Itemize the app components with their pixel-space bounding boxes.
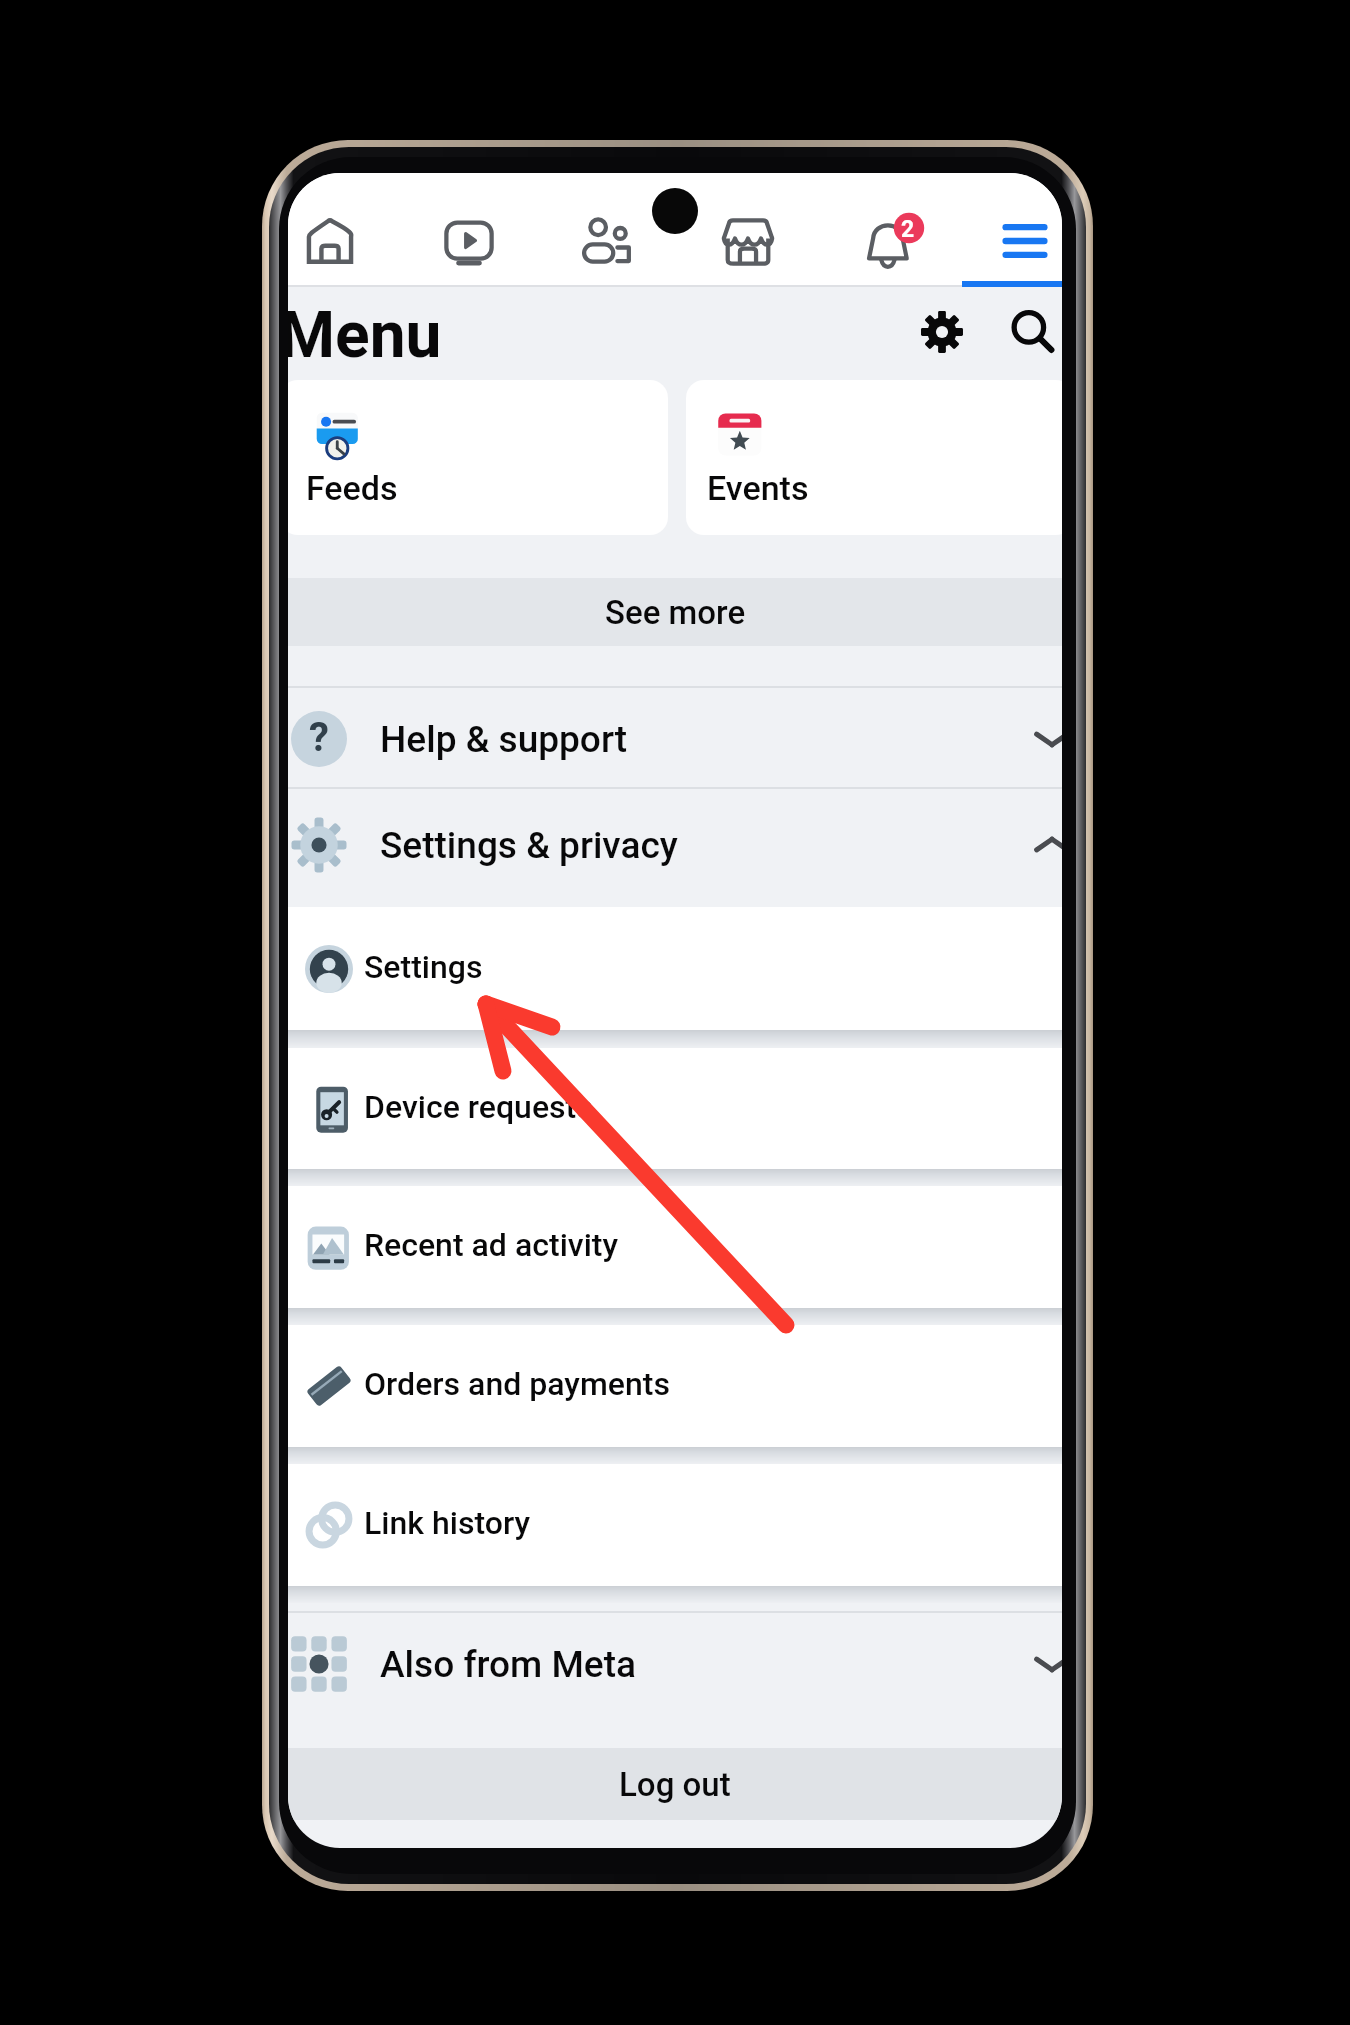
button[interactable]: Settings <box>902 292 982 372</box>
staticText: See more <box>605 593 746 632</box>
button[interactable]: Marketplace <box>692 191 804 291</box>
staticText: 2 <box>901 216 915 243</box>
button[interactable]: Video <box>413 191 525 291</box>
staticText: Settings & privacy <box>380 824 678 867</box>
button[interactable]: Home <box>288 191 386 291</box>
staticText: Recent ad activity <box>364 1226 619 1264</box>
button[interactable]: Notifications <box>840 191 952 291</box>
button[interactable]: Link history <box>288 1464 1062 1586</box>
button[interactable]: Recent ad activity <box>288 1186 1062 1308</box>
button[interactable]: Friends <box>551 191 663 291</box>
button[interactable]: Settings & privacy <box>288 787 1062 907</box>
button[interactable]: Settings <box>288 907 1062 1030</box>
button[interactable]: ? <box>288 686 1062 787</box>
staticText: Help & support <box>380 718 628 761</box>
staticText: Menu <box>288 298 442 373</box>
staticText: Orders and payments <box>364 1365 670 1403</box>
button[interactable]: Log out <box>288 1748 1062 1820</box>
button[interactable]: Search <box>993 292 1062 372</box>
button[interactable]: Feeds <box>288 380 668 535</box>
staticText: Events <box>707 468 809 508</box>
button[interactable]: See more <box>288 578 1062 646</box>
staticText: Feeds <box>306 468 398 508</box>
staticText: Settings <box>364 948 483 986</box>
staticText: Log out <box>619 1765 731 1804</box>
button[interactable]: Menu <box>969 191 1062 291</box>
button[interactable]: Orders and payments <box>288 1325 1062 1447</box>
staticText: ? <box>309 714 329 761</box>
staticText: Link history <box>364 1504 530 1542</box>
button[interactable]: Device requests <box>288 1048 1062 1169</box>
staticText: Device requests <box>364 1088 593 1126</box>
button[interactable]: Also from Meta <box>288 1611 1062 1748</box>
button[interactable]: Events <box>686 380 1062 535</box>
staticText: Also from Meta <box>380 1643 637 1686</box>
